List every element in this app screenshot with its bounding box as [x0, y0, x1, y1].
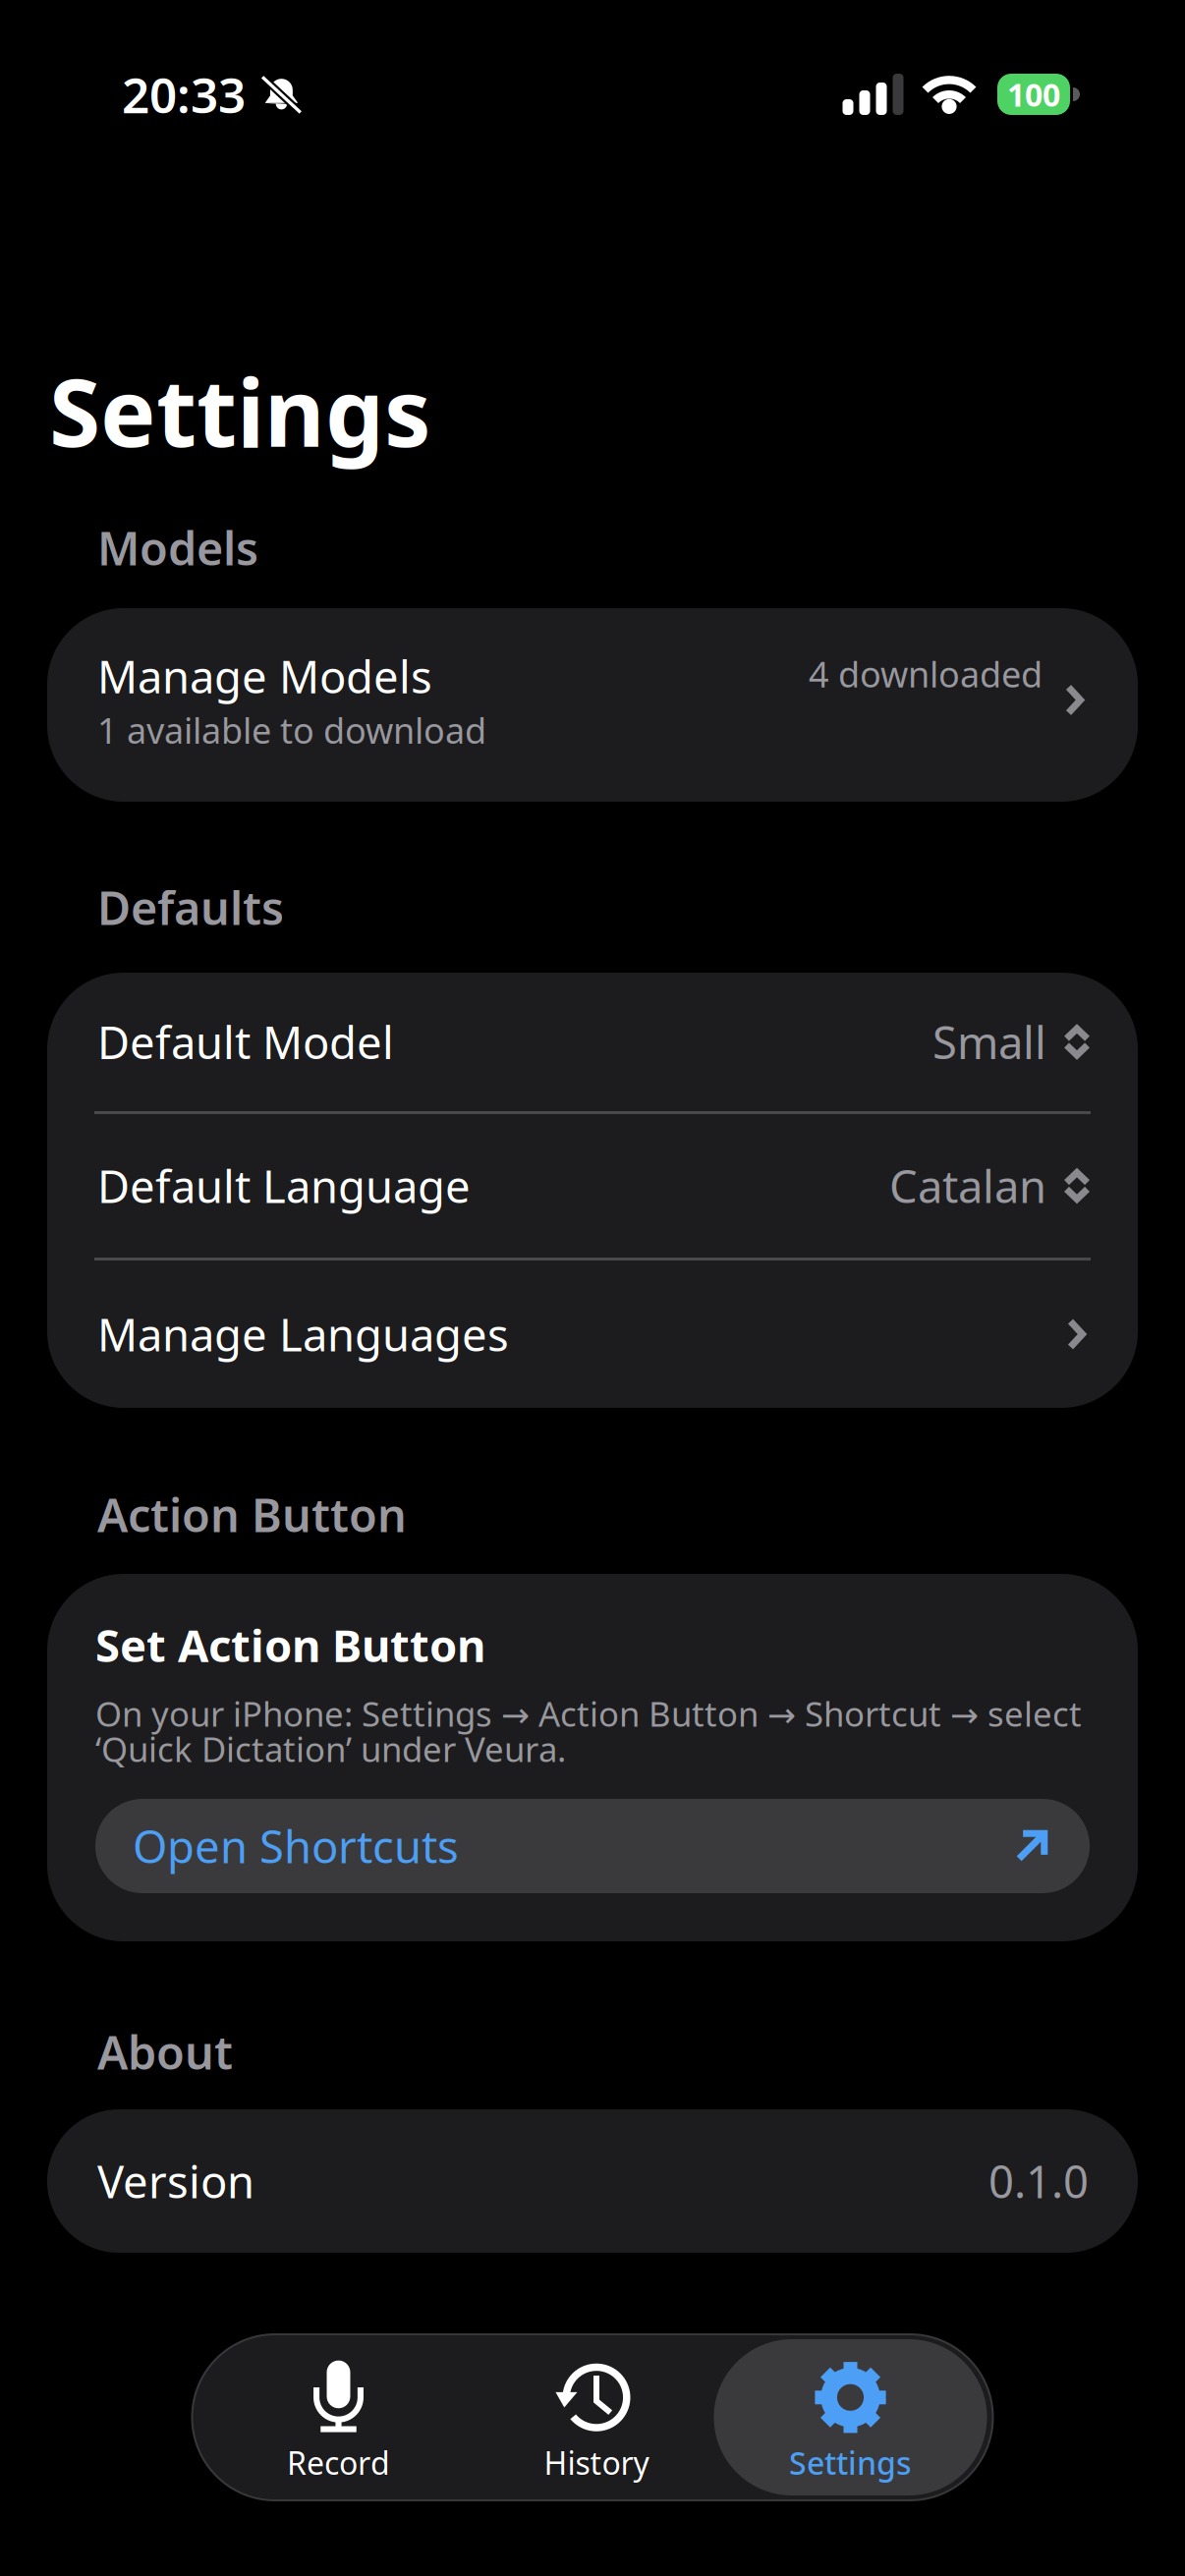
staticText: ‘Quick Dictation’ under Veura.: [95, 1726, 566, 1771]
staticText: Record: [287, 2442, 390, 2483]
staticText: Default Model: [97, 1012, 394, 1071]
button[interactable]: Manage Models: [47, 608, 1138, 802]
staticText: Settings: [49, 349, 431, 472]
staticText: Set Action Button: [95, 1615, 485, 1674]
staticText: Open Shortcuts: [133, 1816, 459, 1876]
staticText: Version: [97, 2151, 254, 2211]
staticText: Default Language: [97, 1156, 471, 1215]
staticText: Models: [97, 517, 258, 578]
staticText: Catalan: [889, 1156, 1046, 1215]
button[interactable]: Manage Languages: [47, 1260, 1138, 1408]
staticText: 4 downloaded: [809, 650, 1043, 697]
staticText: 20:33: [122, 62, 246, 126]
staticText: History: [544, 2442, 649, 2483]
button[interactable]: Default Model: [47, 973, 1138, 1111]
staticText: 1 available to download: [97, 707, 486, 754]
staticText: On your iPhone: Settings → Action Button…: [95, 1691, 1082, 1736]
staticText: Settings: [789, 2442, 912, 2483]
staticText: About: [97, 2021, 233, 2082]
staticText: Defaults: [97, 877, 284, 938]
button[interactable]: Default Language: [47, 1114, 1138, 1258]
staticText: Manage Models: [97, 646, 432, 706]
staticText: 0.1.0: [988, 2151, 1089, 2211]
staticText: Manage Languages: [97, 1305, 509, 1364]
button[interactable]: Settings: [714, 2339, 987, 2495]
button[interactable]: Open Shortcuts: [95, 1799, 1090, 1893]
button[interactable]: History: [479, 2339, 714, 2495]
staticText: 100: [1007, 73, 1060, 115]
button[interactable]: Record: [198, 2339, 479, 2495]
staticText: Action Button: [97, 1484, 407, 1545]
staticText: Small: [932, 1012, 1046, 1071]
